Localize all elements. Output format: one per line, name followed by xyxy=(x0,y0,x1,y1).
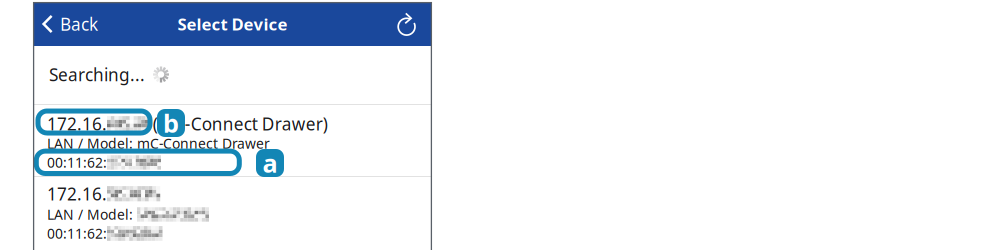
staticText: Back xyxy=(60,12,98,36)
staticText: LAN / Model: mC-Connect Drawer xyxy=(47,134,270,153)
button[interactable]: Refresh xyxy=(385,2,429,46)
staticText: 00:11:62: xyxy=(47,224,107,243)
staticText: LAN / Model: xyxy=(47,205,137,224)
staticText: b xyxy=(163,106,179,140)
staticText: 172.16. xyxy=(47,182,107,205)
button[interactable]: Back xyxy=(33,2,110,46)
staticText: a xyxy=(262,146,277,180)
staticText: 172.16. xyxy=(47,112,107,135)
button[interactable]: 172.16. xyxy=(33,105,432,179)
button[interactable]: 172.16. xyxy=(33,177,432,250)
staticText: Searching... xyxy=(49,63,145,86)
staticText: 00:11:62: xyxy=(47,153,107,172)
staticText: (mC-Connect Drawer) xyxy=(149,112,328,135)
staticText: Select Device xyxy=(177,13,287,35)
